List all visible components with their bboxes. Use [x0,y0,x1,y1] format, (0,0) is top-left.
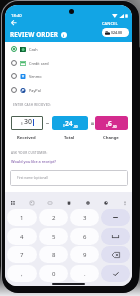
staticText: 0 [52,270,56,278]
button[interactable]: 5 [39,228,68,245]
button[interactable]: Cash [11,42,132,56]
staticText: 24 [65,119,73,128]
button[interactable]: 9 [70,246,99,263]
button[interactable]: Settings [84,199,91,206]
button[interactable]: 8 [39,246,68,263]
button[interactable]: enter [101,265,130,282]
staticText: 8 [52,251,56,259]
button[interactable]: 2 [39,209,68,226]
button[interactable]: $24.00 [102,28,129,37]
button[interactable]: Equals [88,119,97,128]
button[interactable]: Minus [43,119,52,128]
staticText: 7 [20,251,24,259]
staticText: 5 [52,233,56,241]
button[interactable]: minus [101,209,130,226]
staticText: 4 [20,233,24,241]
button[interactable]: Credit card [11,56,132,70]
staticText: Credit card [29,61,49,66]
staticText: $ [63,123,65,127]
staticText: 2 [52,214,56,222]
staticText: CANCEL [102,21,118,26]
button[interactable]: PayPal [11,83,132,97]
button[interactable]: Gif [46,199,53,206]
button[interactable]: Venmo [11,69,132,83]
staticText: Total [64,135,75,141]
staticText: 6 [108,119,112,128]
button[interactable]: Voice input [121,199,128,206]
button[interactable]: Sticker [28,199,35,206]
button[interactable]: 3 [70,209,99,226]
button[interactable]: 0 [39,265,68,282]
button[interactable]: Keyboard layouts [9,199,16,206]
staticText: . [84,270,86,278]
button[interactable]: backspace [101,246,130,263]
button[interactable]: Theme [102,199,109,206]
staticText: i [63,33,65,38]
staticText: 30 [24,117,33,127]
button[interactable]: First name (optional) [10,170,128,186]
button[interactable]: 4 [7,228,37,245]
staticText: $24.00 [111,30,122,35]
button[interactable]: 6 [70,228,99,245]
staticText: , [21,270,23,278]
button[interactable]: $ [52,116,88,130]
button[interactable]: space [101,228,130,245]
other: Info [61,32,67,38]
button[interactable]: $ [95,116,128,130]
staticText: First name (optional) [17,176,48,180]
staticText: 6 [83,233,87,241]
button[interactable]: 1 [7,209,37,226]
button[interactable]: Back [9,18,18,27]
staticText: 18:40 [11,13,22,19]
button[interactable]: 7 [7,246,37,263]
staticText: Change [103,135,119,141]
staticText: Received [17,135,36,141]
staticText: 3 [83,214,87,222]
staticText: $ [106,123,108,127]
button[interactable]: Clipboard [65,199,72,206]
button[interactable]: Would you like a receipt? [11,158,57,165]
staticText: PayPal [29,88,41,93]
button[interactable]: , [7,265,37,282]
staticText: Would you like a receipt? [11,159,57,164]
staticText: REVIEW ORDER [10,30,59,39]
button[interactable]: $ [11,116,43,130]
staticText: .00 [112,124,117,128]
button[interactable]: REVIEW ORDER [10,29,67,40]
staticText: ASK YOUR CUSTOMER: [11,151,48,155]
staticText: 1 [20,214,24,222]
staticText: Venmo [29,74,42,79]
button[interactable]: . [70,265,99,282]
staticText: ENTER CASH RECEIVED: [13,103,52,107]
staticText: Cash [29,47,38,52]
staticText: .00 [73,124,78,128]
button[interactable]: CANCEL [100,18,120,29]
staticText: $ [21,122,23,126]
staticText: 9 [83,251,87,259]
